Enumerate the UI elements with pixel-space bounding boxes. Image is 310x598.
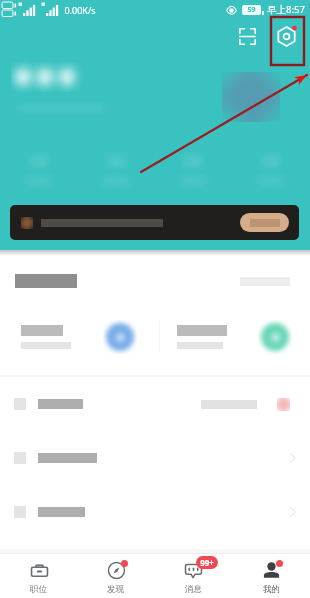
staticText: 发现: [107, 584, 124, 595]
button[interactable]: [240, 213, 289, 232]
staticText: 99+: [200, 557, 214, 568]
staticText: 59: [247, 5, 256, 15]
staticText: 早上8:57: [267, 3, 305, 16]
button[interactable]: Scan QR code: [232, 21, 262, 51]
button[interactable]: [232, 152, 310, 192]
button[interactable]: [154, 152, 232, 192]
staticText: 我的: [263, 584, 280, 595]
button[interactable]: [0, 431, 310, 485]
button[interactable]: [155, 306, 310, 368]
button[interactable]: [10, 205, 299, 240]
staticText: 消息: [185, 584, 202, 595]
button[interactable]: [0, 306, 155, 368]
button[interactable]: [0, 377, 310, 431]
button[interactable]: 99+: [154, 554, 232, 598]
staticText: 职位: [30, 584, 47, 595]
button[interactable]: Settings: [271, 21, 301, 51]
button[interactable]: [0, 152, 77, 192]
button[interactable]: 发现: [77, 554, 154, 598]
button[interactable]: 我的: [232, 554, 310, 598]
staticText: 0.00K/s: [64, 4, 96, 16]
button[interactable]: [0, 485, 310, 539]
button[interactable]: [77, 152, 154, 192]
button[interactable]: 职位: [0, 554, 77, 598]
